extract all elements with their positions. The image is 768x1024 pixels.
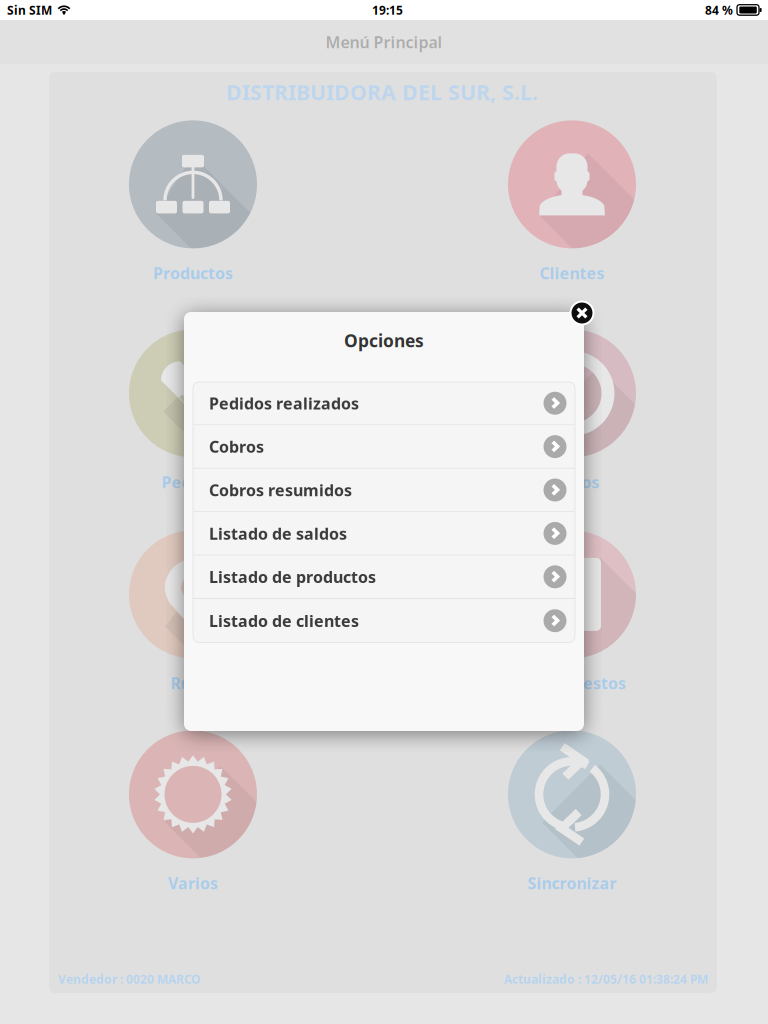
button[interactable]: Rutas (103, 530, 283, 696)
button[interactable]: Presupuestos (482, 530, 662, 696)
staticText: Cobros (209, 436, 264, 457)
button[interactable]: Productos (103, 120, 283, 286)
staticText: Actualizado : 12/05/16 01:38:24 PM (504, 971, 708, 987)
button[interactable]: Cobros (193, 425, 575, 469)
staticText: Cobros resumidos (209, 479, 352, 501)
staticText: Listado de productos (209, 566, 376, 587)
staticText: Vendedor : 0020 MARCO (58, 971, 200, 987)
staticText: Pedidos (161, 471, 224, 493)
button[interactable]: Listado de productos (193, 556, 575, 599)
staticText: Sincronizar (527, 872, 616, 894)
staticText: Rutas (170, 672, 215, 694)
button[interactable]: Cobros resumidos (193, 469, 575, 512)
button[interactable]: Cobros (482, 329, 662, 495)
button[interactable]: Pedidos (103, 329, 283, 495)
staticText: DISTRIBUIDORA DEL SUR, S.L. (226, 78, 538, 106)
button[interactable]: Cerrar (569, 300, 595, 326)
staticText: Sin SIM (7, 2, 52, 18)
button[interactable]: Clientes (482, 120, 662, 286)
staticText: 19:15 (372, 2, 403, 18)
button[interactable]: Varios (103, 730, 283, 896)
staticText: Menú Principal (325, 31, 442, 53)
staticText: Presupuestos (518, 672, 626, 694)
button[interactable]: Sincronizar (482, 730, 662, 896)
staticText: Listado de clientes (209, 610, 359, 631)
staticText: Cobros (544, 471, 599, 493)
button[interactable]: Listado de saldos (193, 512, 575, 556)
staticText: Productos (153, 262, 233, 284)
button[interactable]: Listado de clientes (193, 599, 575, 642)
staticText: Listado de saldos (209, 523, 347, 544)
staticText: Clientes (539, 262, 604, 284)
staticText: 84 % (705, 2, 733, 18)
button[interactable]: Pedidos realizados (193, 382, 575, 425)
staticText: Opciones (344, 329, 424, 352)
staticText: Varios (168, 872, 218, 894)
staticText: Pedidos realizados (209, 393, 359, 414)
